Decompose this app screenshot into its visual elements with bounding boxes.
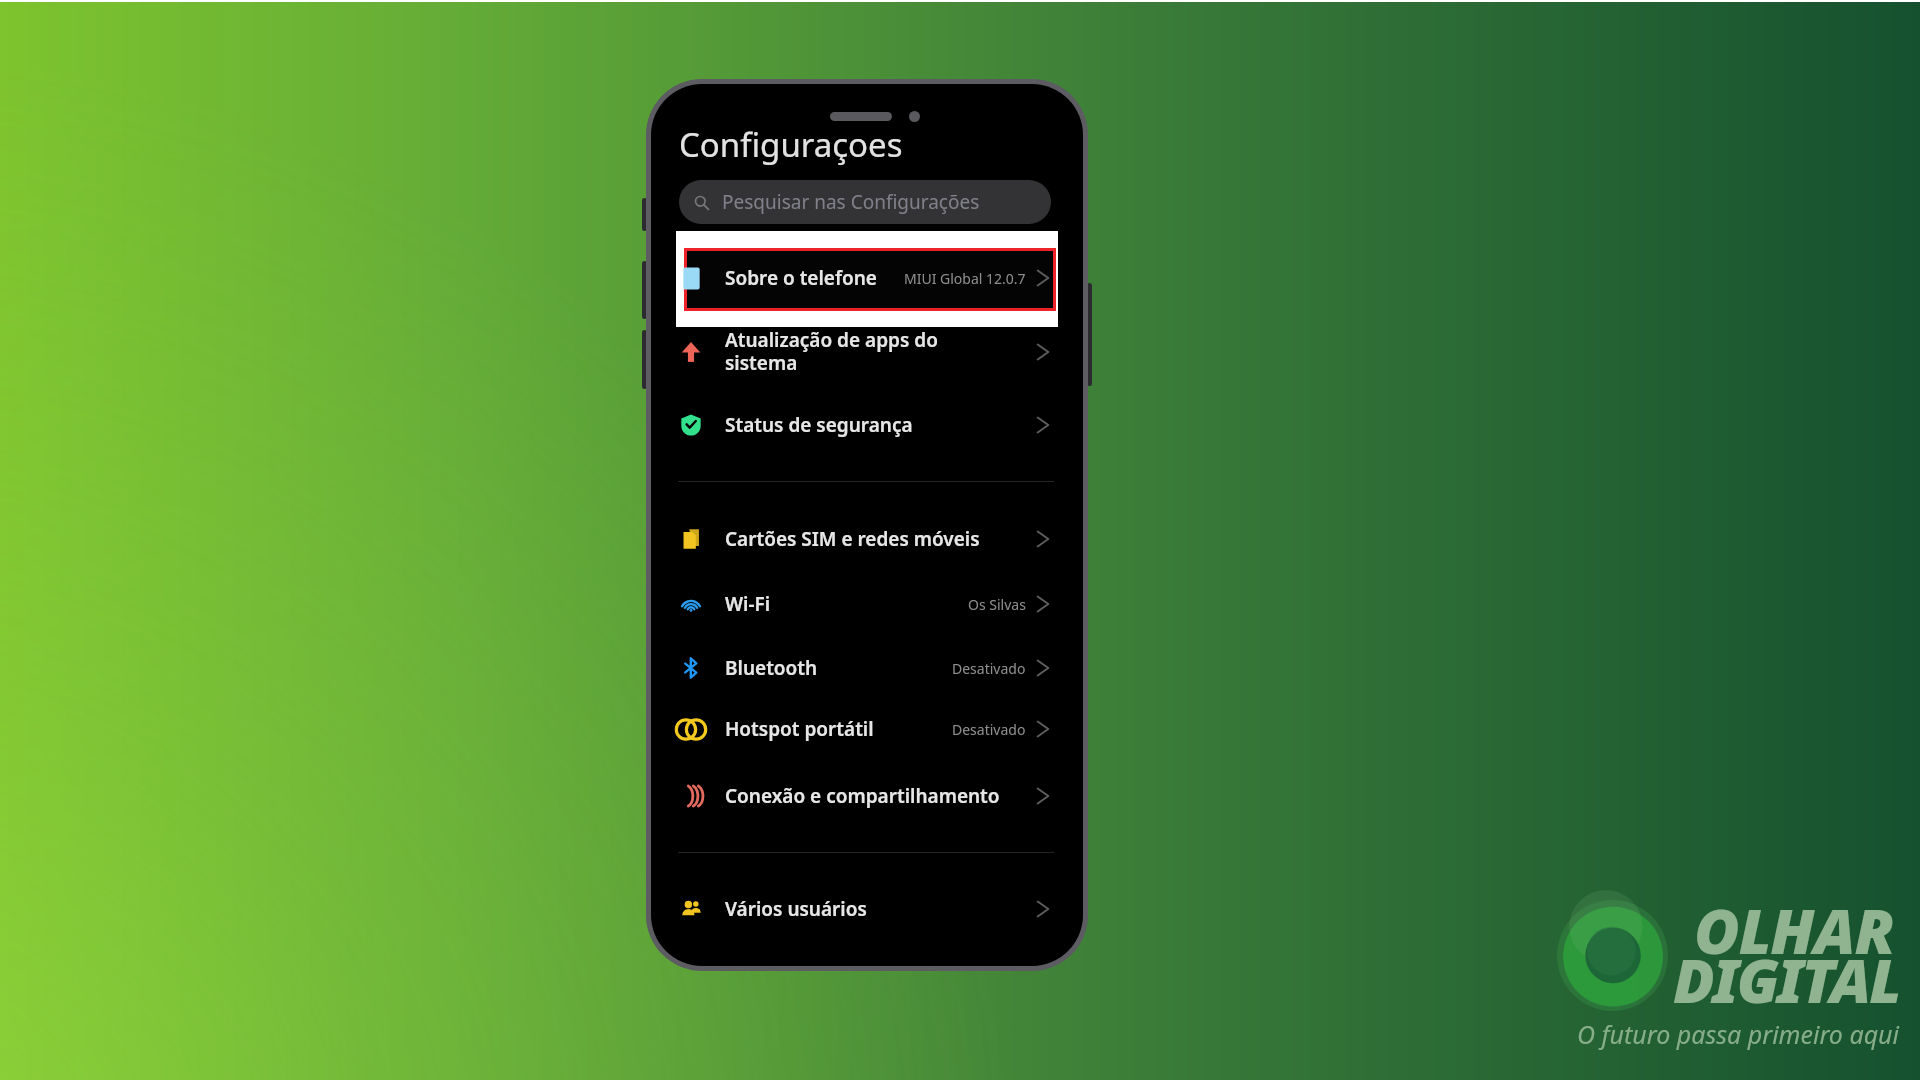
staticText: Sobre o telefone [725, 265, 904, 291]
button[interactable]: Bluetooth [651, 643, 1083, 693]
staticText: Conexão e compartilhamento [725, 783, 1036, 809]
button[interactable]: Hotspot portátil [651, 704, 1083, 754]
staticText: MIUI Global 12.0.7 [904, 269, 1026, 288]
staticText: Os Silvas [968, 595, 1026, 614]
staticText: Atualização de apps do sistema [725, 327, 1036, 376]
button[interactable]: Wi-Fi [651, 579, 1083, 629]
staticText: O futuro passa primeiro aqui [1577, 1017, 1900, 1051]
staticText: Hotspot portátil [725, 716, 952, 742]
button[interactable]: Conexão e compartilhamento [651, 771, 1083, 821]
staticText: Wi-Fi [725, 591, 968, 617]
button[interactable]: Vários usuários [651, 884, 1083, 934]
staticText: Vários usuários [725, 896, 1036, 922]
button[interactable]: Pesquisar nas Configurações [679, 180, 1051, 224]
staticText: Pesquisar nas Configurações [722, 189, 980, 215]
staticText: Desativado [952, 720, 1026, 739]
button[interactable]: Status de segurança [651, 400, 1083, 450]
button[interactable]: Atualização de apps do sistema [651, 319, 1083, 384]
staticText: Configuraçoes [679, 122, 903, 167]
staticText: DIGITAL [1673, 938, 1900, 1021]
staticText: OLHAR [1694, 888, 1894, 972]
staticText: Cartões SIM e redes móveis [725, 526, 1036, 552]
button[interactable]: Cartões SIM e redes móveis [651, 514, 1083, 564]
staticText: Bluetooth [725, 655, 952, 681]
button[interactable]: Sobre o telefone [651, 253, 1083, 303]
staticText: Status de segurança [725, 412, 1036, 438]
staticText: Desativado [952, 659, 1026, 678]
